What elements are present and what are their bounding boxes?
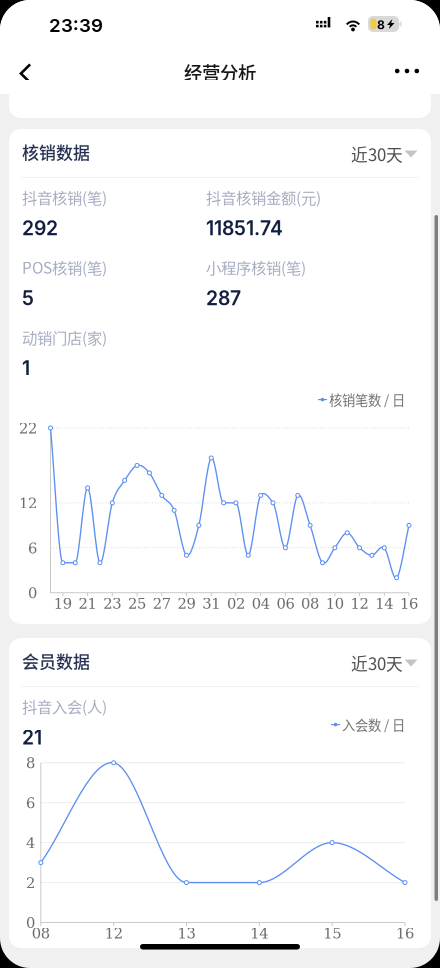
staticText: 6 (28, 540, 37, 557)
staticText: 14 (250, 925, 268, 942)
staticText: 10 (326, 595, 344, 612)
staticText: 22 (19, 420, 37, 437)
staticText: 入会数 / 日 (342, 715, 405, 734)
staticText: 11851.74 (206, 216, 283, 240)
staticText: 23 (103, 595, 121, 612)
staticText: 08 (32, 925, 50, 942)
button[interactable]: 近30天 (351, 138, 431, 168)
staticText: 14 (375, 595, 393, 612)
staticText: 4 (26, 835, 35, 852)
staticText: 2 (26, 875, 35, 892)
staticText: 19 (54, 595, 72, 612)
staticText: 近30天 (351, 651, 403, 675)
staticText: 1 (22, 356, 30, 380)
staticText: 抖音核销金额(元) (206, 186, 321, 208)
staticText: 15 (323, 925, 341, 942)
staticText: 0 (28, 585, 37, 602)
staticText: 核销数据 (22, 140, 90, 164)
staticText: 13 (177, 925, 195, 942)
staticText: 抖音入会(人) (22, 695, 107, 717)
staticText: 21 (22, 726, 42, 749)
staticText: 经营分析 (184, 59, 256, 85)
staticText: 5 (22, 286, 34, 310)
staticText: 6 (26, 795, 35, 812)
staticText: 会员数据 (22, 649, 90, 673)
staticText: 核销笔数 / 日 (329, 390, 405, 409)
staticText: 27 (153, 595, 171, 612)
staticText: 287 (206, 286, 241, 310)
staticText: 292 (22, 216, 58, 240)
staticText: 0 (26, 914, 35, 932)
staticText: POS核销(笔) (22, 256, 107, 278)
staticText: 小程序核销(笔) (206, 256, 306, 278)
staticText: 16 (400, 595, 418, 612)
staticText: 8 (377, 17, 385, 32)
staticText: 23:39 (49, 14, 103, 36)
staticText: 8 (26, 755, 35, 772)
button[interactable]: 近30天 (351, 647, 431, 677)
staticText: 16 (396, 925, 414, 942)
staticText: 25 (128, 595, 146, 612)
staticText: 近30天 (351, 142, 403, 166)
button[interactable]: More options (384, 51, 430, 91)
staticText: 12 (351, 595, 369, 612)
staticText: 动销门店(家) (22, 326, 107, 348)
staticText: 12 (19, 495, 37, 512)
staticText: 12 (105, 925, 123, 942)
button[interactable]: Back (6, 50, 44, 97)
staticText: 06 (276, 595, 294, 612)
staticText: 02 (227, 595, 245, 612)
staticText: 04 (252, 595, 270, 612)
staticText: 抖音核销(笔) (22, 186, 107, 208)
staticText: 21 (79, 595, 97, 612)
staticText: 08 (301, 595, 319, 612)
staticText: 31 (202, 595, 220, 612)
staticText: 29 (177, 595, 195, 612)
